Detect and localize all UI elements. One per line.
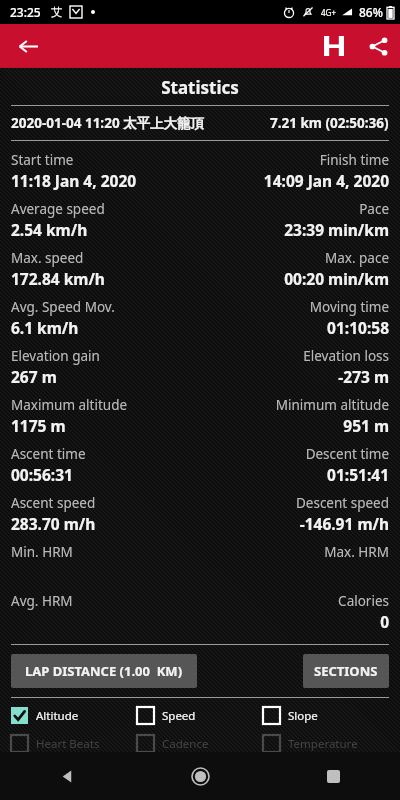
- staticText: Maximum altitude: [11, 396, 200, 414]
- staticText: Finish time: [200, 151, 389, 169]
- staticText: -146.91 m/h: [200, 513, 389, 534]
- staticText: 00:56:31: [11, 464, 200, 485]
- staticText: LAP DISTANCE (1.00 KM): [25, 662, 183, 680]
- staticText: Speed: [162, 708, 196, 724]
- button[interactable]: SECTIONS: [303, 654, 389, 688]
- staticText: 艾: [51, 5, 62, 19]
- staticText: 14:09 Jan 4, 2020: [200, 170, 389, 191]
- button[interactable]: Back: [8, 26, 48, 66]
- staticText: Avg. Speed Mov.: [11, 298, 200, 316]
- staticText: 86%: [359, 4, 383, 20]
- button[interactable]: Temperature: [263, 735, 389, 752]
- button[interactable]: Home: [134, 752, 267, 800]
- button[interactable]: Recent apps: [267, 752, 400, 800]
- staticText: Cadence: [162, 736, 209, 752]
- staticText: [200, 562, 389, 583]
- staticText: Elevation loss: [200, 347, 389, 365]
- staticText: 01:51:41: [200, 464, 389, 485]
- staticText: 00:20 min/km: [200, 268, 389, 289]
- button[interactable]: Share: [356, 24, 400, 68]
- staticText: 23:39 min/km: [200, 219, 389, 240]
- staticText: Heart Beats: [36, 736, 100, 752]
- staticText: Calories: [200, 592, 389, 610]
- staticText: 2.54 km/h: [11, 219, 200, 240]
- staticText: Avg. HRM: [11, 592, 200, 610]
- staticText: Moving time: [200, 298, 389, 316]
- staticText: 01:10:58: [200, 317, 389, 338]
- staticText: Statistics: [0, 76, 400, 99]
- staticText: Ascent speed: [11, 494, 200, 512]
- staticText: Altitude: [36, 708, 79, 724]
- staticText: 0: [200, 611, 389, 632]
- staticText: Slope: [288, 708, 318, 724]
- staticText: 11:18 Jan 4, 2020: [11, 170, 200, 191]
- button[interactable]: Altitude: [11, 707, 137, 724]
- staticText: Max. HRM: [200, 543, 389, 561]
- button[interactable]: Speed: [137, 707, 263, 724]
- staticText: [11, 611, 200, 632]
- staticText: Minimum altitude: [200, 396, 389, 414]
- staticText: Descent time: [200, 445, 389, 463]
- staticText: 267 m: [11, 366, 200, 387]
- staticText: SECTIONS: [314, 662, 378, 680]
- button[interactable]: Save: [312, 24, 356, 68]
- staticText: Descent speed: [200, 494, 389, 512]
- staticText: 951 m: [200, 415, 389, 436]
- staticText: Elevation gain: [11, 347, 200, 365]
- staticText: 7.21 km (02:50:36): [270, 114, 389, 132]
- staticText: 172.84 km/h: [11, 268, 200, 289]
- staticText: Pace: [200, 200, 389, 218]
- staticText: Temperature: [288, 736, 358, 752]
- staticText: Min. HRM: [11, 543, 200, 561]
- staticText: [11, 562, 200, 583]
- staticText: 1175 m: [11, 415, 200, 436]
- button[interactable]: Slope: [263, 707, 389, 724]
- staticText: Ascent time: [11, 445, 200, 463]
- button[interactable]: Cadence: [137, 735, 263, 752]
- staticText: 6.1 km/h: [11, 317, 200, 338]
- staticText: 283.70 m/h: [11, 513, 200, 534]
- staticText: Start time: [11, 151, 200, 169]
- button[interactable]: LAP DISTANCE (1.00 KM): [11, 654, 197, 688]
- staticText: -273 m: [200, 366, 389, 387]
- staticText: 23:25: [10, 4, 41, 20]
- staticText: Max. pace: [200, 249, 389, 267]
- staticText: 2020-01-04 11:20 太平上大籠頂: [11, 114, 205, 132]
- button[interactable]: Back: [0, 752, 134, 800]
- button[interactable]: Heart Beats: [11, 735, 137, 752]
- staticText: Average speed: [11, 200, 200, 218]
- staticText: 4G+: [321, 7, 336, 18]
- staticText: Max. speed: [11, 249, 200, 267]
